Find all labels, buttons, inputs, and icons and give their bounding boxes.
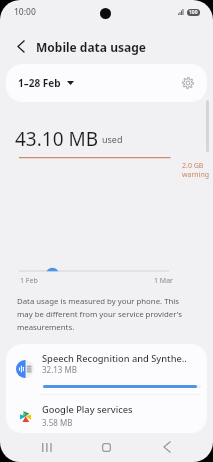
staticText: 43.10 MB: [15, 126, 99, 152]
button[interactable]: Navigate up: [9, 34, 33, 58]
button[interactable]: Back: [151, 434, 182, 460]
button[interactable]: Google Play services: [6, 395, 207, 433]
staticText: 1–28 Feb: [18, 76, 61, 90]
staticText: 1 Feb: [20, 276, 38, 286]
button[interactable]: 1–28 Feb: [18, 76, 74, 90]
button[interactable]: Recent apps: [31, 434, 62, 460]
staticText: 2.0 GB: [182, 161, 204, 171]
staticText: 3.58 MB: [42, 417, 73, 428]
button[interactable]: Speech Recognition and Synthe..: [6, 344, 207, 394]
button[interactable]: Home: [91, 434, 122, 460]
staticText: Google Play services: [42, 403, 133, 416]
staticText: Data usage is measured by your phone. Th…: [17, 296, 195, 332]
staticText: warning: [182, 170, 210, 180]
staticText: 32.13 MB: [42, 364, 77, 375]
staticText: Speech Recognition and Synthe..: [42, 352, 187, 365]
staticText: 1 Mar: [154, 276, 173, 286]
staticText: used: [102, 133, 123, 145]
staticText: Mobile data usage: [36, 39, 146, 55]
staticText: 10:00: [14, 6, 36, 18]
staticText: 100: [189, 9, 198, 16]
button[interactable]: Settings: [173, 68, 203, 98]
